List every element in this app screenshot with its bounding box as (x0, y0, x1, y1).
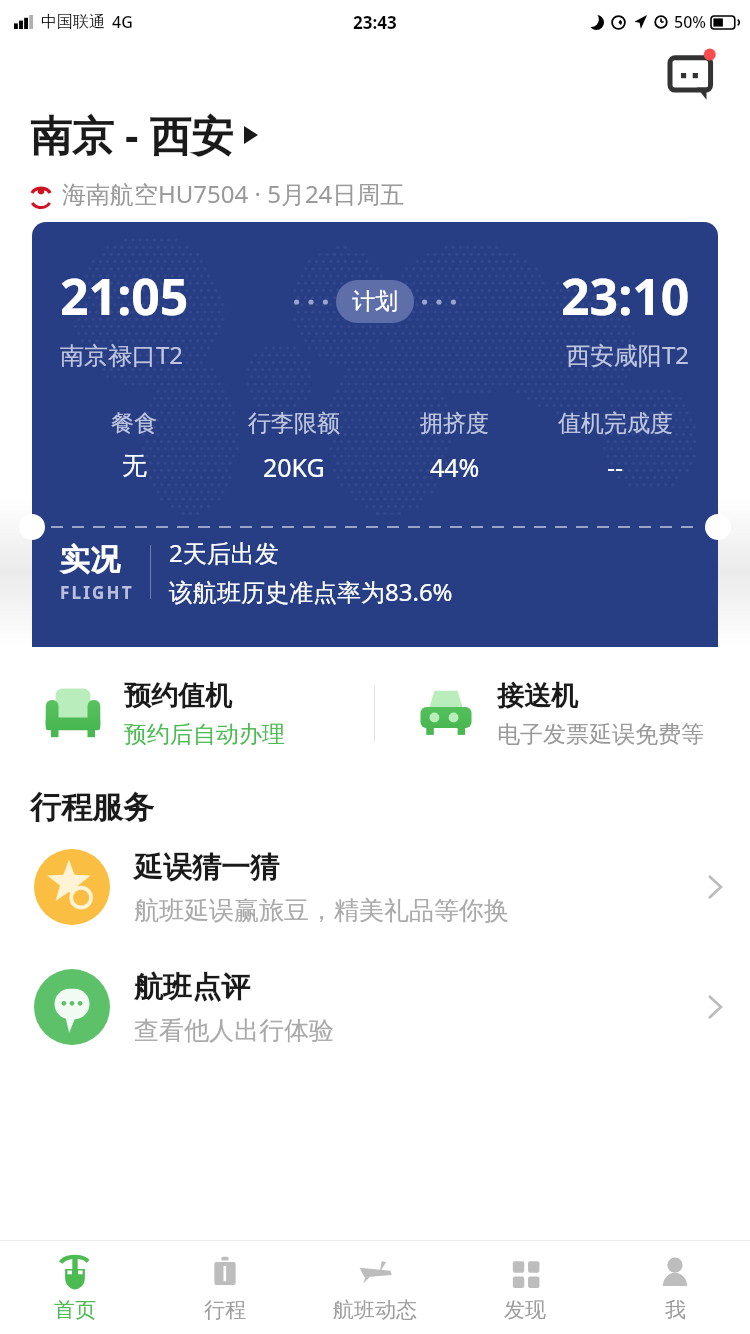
staticText: 21:05 (60, 262, 189, 330)
staticText: 餐食 (111, 409, 157, 438)
staticText: 航班动态 (333, 1297, 417, 1323)
button[interactable]: 我 (600, 1241, 750, 1334)
staticText: 23:10 (561, 262, 690, 330)
staticText: 50% (674, 11, 706, 33)
staticText: 预约值机 (124, 679, 232, 713)
staticText: 我 (665, 1297, 686, 1323)
button[interactable]: Messages (670, 49, 722, 101)
staticText: 航班延误赢旅豆，精美礼品等你换 (134, 895, 509, 926)
staticText: 该航班历史准点率为83.6% (169, 575, 453, 608)
staticText: 2天后出发 (169, 536, 279, 569)
staticText: 行程 (204, 1297, 246, 1323)
staticText: 电子发票延误免费等 (497, 720, 704, 749)
staticText: 海南航空HU7504 · 5月24日周五 (62, 177, 405, 210)
staticText: 延误猜一猜 (134, 849, 279, 886)
staticText: 航班点评 (134, 969, 250, 1006)
staticText: 计划 (352, 287, 398, 316)
staticText: 实况 (60, 541, 120, 579)
button[interactable]: 发现 (450, 1241, 600, 1334)
staticText: 23:43 (353, 11, 397, 34)
staticText: 行程服务 (30, 788, 154, 827)
button[interactable]: 行程 (150, 1241, 300, 1334)
staticText: 44% (430, 450, 480, 484)
staticText: FLIGHT (60, 581, 134, 604)
button[interactable]: 接送机 (375, 661, 750, 766)
staticText: 4G (112, 11, 133, 33)
button[interactable]: 预约值机 (0, 661, 374, 766)
staticText: 拥挤度 (420, 409, 489, 438)
button[interactable]: 航班点评 (0, 947, 750, 1067)
button[interactable]: 延误猜一猜 (0, 827, 750, 947)
button[interactable]: 首页 (0, 1241, 150, 1334)
staticText: 中国联通 (41, 12, 105, 32)
button[interactable]: 南京 - 西安 (30, 106, 258, 163)
staticText: -- (607, 450, 624, 484)
staticText: 20KG (263, 450, 325, 484)
staticText: 南京禄口T2 (60, 338, 184, 371)
staticText: 查看他人出行体验 (134, 1015, 334, 1046)
staticText: 接送机 (497, 679, 578, 713)
staticText: 预约后自动办理 (124, 720, 285, 749)
staticText: 西安咸阳T2 (566, 338, 690, 371)
staticText: 行李限额 (248, 409, 340, 438)
button[interactable]: 航班动态 (300, 1241, 450, 1334)
staticText: 南京 - 西安 (30, 106, 234, 163)
staticText: 首页 (54, 1297, 96, 1323)
staticText: 发现 (504, 1297, 546, 1323)
staticText: 无 (122, 450, 147, 481)
staticText: 值机完成度 (558, 409, 673, 438)
